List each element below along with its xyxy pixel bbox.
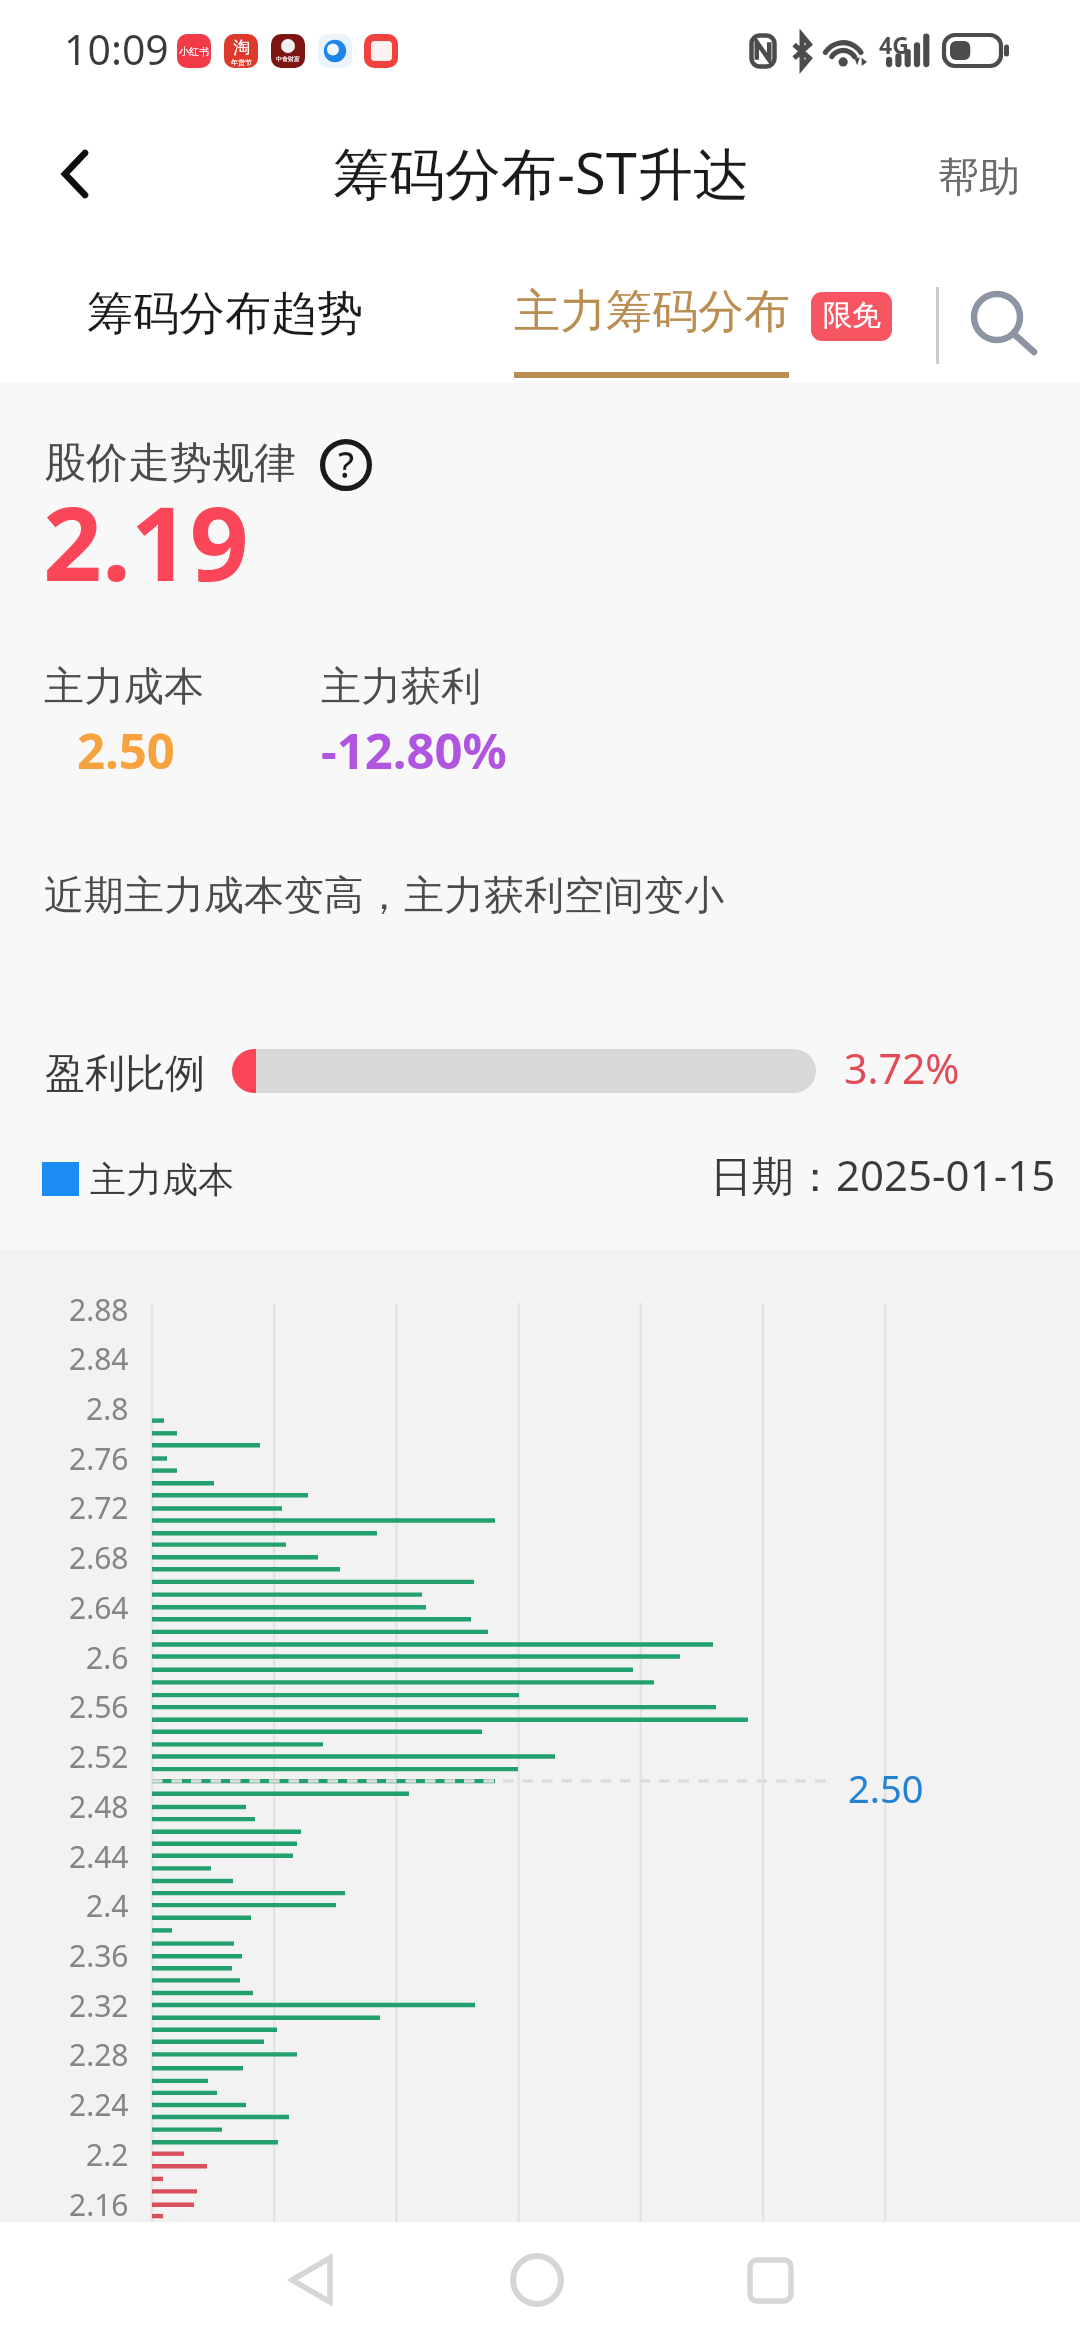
- staticText: 淘: [233, 37, 250, 58]
- staticText: 2.76: [69, 1438, 129, 1479]
- staticText: 2.28: [69, 2034, 129, 2075]
- button[interactable]: 筹码分布趋势: [20, 241, 430, 383]
- button[interactable]: Help: [318, 437, 374, 493]
- staticText: 4G: [879, 29, 909, 60]
- staticText: 2.19: [43, 471, 249, 611]
- staticText: 帮助: [938, 152, 1020, 204]
- staticText: 2.84: [69, 1338, 129, 1379]
- staticText: 中食财富: [276, 55, 300, 63]
- staticText: 2.6: [86, 1637, 129, 1678]
- button[interactable]: 主力筹码分布: [466, 241, 838, 383]
- button[interactable]: Home: [472, 2221, 602, 2339]
- staticText: 2.88: [69, 1289, 129, 1330]
- staticText: 2.48: [69, 1786, 129, 1827]
- button[interactable]: Back: [0, 106, 146, 241]
- button[interactable]: Search: [950, 241, 1050, 383]
- staticText: 日期：2025-01-15: [710, 1146, 1056, 1203]
- staticText: ?: [338, 440, 355, 489]
- staticText: 2.68: [69, 1537, 129, 1578]
- staticText: 2.36: [69, 1935, 129, 1976]
- staticText: 2.64: [69, 1587, 129, 1628]
- staticText: 限免: [823, 297, 881, 334]
- staticText: 筹码分布-ST升达: [333, 134, 749, 210]
- staticText: 2.2: [86, 2134, 129, 2175]
- staticText: 股价走势规律: [44, 437, 296, 490]
- staticText: 盈利比例: [45, 1048, 205, 1098]
- staticText: 主力获利: [321, 661, 481, 711]
- button[interactable]: 帮助: [906, 106, 1052, 241]
- staticText: 近期主力成本变高，主力获利空间变小: [44, 870, 724, 920]
- staticText: 3.72%: [844, 1040, 960, 1096]
- staticText: 主力筹码分布: [514, 283, 790, 341]
- staticText: 2.4: [86, 1885, 129, 1926]
- staticText: 主力成本: [90, 1157, 234, 1202]
- staticText: 2.52: [69, 1736, 129, 1777]
- staticText: 2.44: [69, 1836, 129, 1877]
- staticText: 2.32: [69, 1985, 129, 2026]
- staticText: 主力成本: [44, 661, 204, 711]
- button[interactable]: Recents: [704, 2221, 834, 2339]
- staticText: 2.50: [848, 1762, 924, 1814]
- button[interactable]: Back: [243, 2221, 373, 2339]
- staticText: 2.8: [86, 1388, 129, 1429]
- staticText: 2.56: [69, 1686, 129, 1727]
- staticText: 年货节: [231, 58, 252, 67]
- staticText: 2.50: [77, 717, 175, 784]
- staticText: 筹码分布趋势: [87, 285, 363, 343]
- staticText: 2.16: [69, 2184, 129, 2225]
- staticText: 小红书: [179, 45, 209, 58]
- staticText: 2.24: [69, 2084, 129, 2125]
- staticText: 2.72: [69, 1487, 129, 1528]
- staticText: -12.80%: [321, 717, 507, 784]
- staticText: 10:09: [64, 21, 169, 77]
